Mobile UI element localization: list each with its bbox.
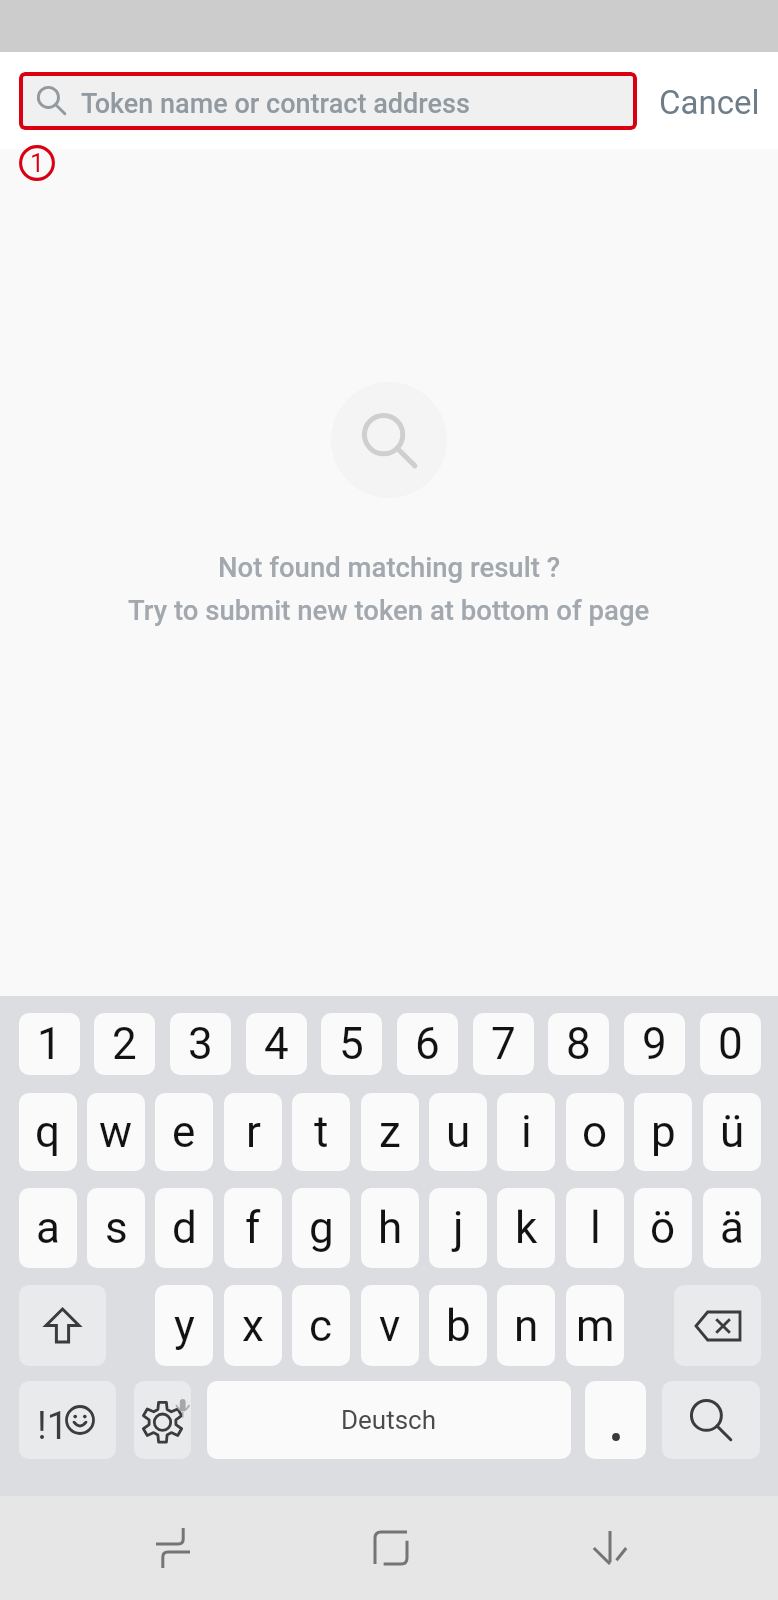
staticText: f <box>245 1202 261 1254</box>
button[interactable]: n <box>497 1285 555 1366</box>
button[interactable]: Symbols and emoji <box>19 1381 116 1459</box>
staticText: n <box>514 1300 539 1352</box>
button[interactable]: ö <box>634 1188 692 1268</box>
button[interactable]: y <box>155 1285 213 1366</box>
staticText: l <box>590 1202 601 1254</box>
button[interactable]: 1 <box>19 1013 80 1075</box>
staticText: 0 <box>718 1018 743 1070</box>
button[interactable]: f <box>224 1188 282 1268</box>
button[interactable]: x <box>224 1285 282 1366</box>
button[interactable]: 0 <box>700 1013 761 1075</box>
staticText: 5 <box>339 1018 364 1070</box>
button[interactable]: 5 <box>321 1013 382 1075</box>
staticText: 2 <box>112 1018 137 1070</box>
button[interactable]: ä <box>703 1188 761 1268</box>
staticText: Not found matching result ? <box>218 551 561 583</box>
staticText: r <box>246 1106 261 1158</box>
button[interactable]: o <box>566 1093 624 1171</box>
button[interactable]: i <box>497 1093 555 1171</box>
button[interactable]: g <box>292 1188 350 1268</box>
staticText: 4 <box>264 1018 289 1070</box>
button[interactable]: r <box>224 1093 282 1171</box>
button[interactable]: p <box>634 1093 692 1171</box>
button[interactable]: s <box>87 1188 145 1268</box>
staticText: a <box>36 1202 60 1254</box>
staticText: 1 <box>37 1018 62 1070</box>
staticText: Try to submit new token at bottom of pag… <box>128 594 650 626</box>
staticText: !1 <box>37 1404 69 1444</box>
button[interactable]: Cancel <box>659 52 760 149</box>
staticText: 9 <box>642 1018 667 1070</box>
button[interactable]: 6 <box>397 1013 458 1075</box>
staticText: v <box>379 1300 401 1352</box>
button[interactable]: d <box>155 1188 213 1268</box>
button[interactable]: 2 <box>94 1013 155 1075</box>
staticText: 8 <box>566 1018 591 1070</box>
staticText: o <box>582 1106 608 1158</box>
button[interactable]: z <box>361 1093 419 1171</box>
button[interactable]: 8 <box>548 1013 609 1075</box>
button[interactable]: 3 <box>170 1013 231 1075</box>
button[interactable]: Recent apps <box>119 1496 227 1600</box>
button[interactable]: b <box>429 1285 487 1366</box>
staticText: i <box>521 1106 532 1158</box>
button[interactable]: Period <box>585 1381 646 1459</box>
staticText: ü <box>720 1106 745 1158</box>
button[interactable]: l <box>566 1188 624 1268</box>
staticText: d <box>172 1202 197 1254</box>
staticText: e <box>172 1106 196 1158</box>
staticText: s <box>105 1202 128 1254</box>
button[interactable]: c <box>292 1285 350 1366</box>
button[interactable]: m <box>566 1285 624 1366</box>
button[interactable]: Shift <box>19 1285 106 1366</box>
staticText: 6 <box>415 1018 440 1070</box>
button[interactable]: Home <box>337 1496 445 1600</box>
staticText: Token name or contract address <box>81 88 470 120</box>
staticText: x <box>242 1300 264 1352</box>
staticText: g <box>309 1202 334 1254</box>
button[interactable]: Deutsch <box>207 1381 571 1459</box>
staticText: y <box>174 1300 195 1352</box>
button[interactable]: ü <box>703 1093 761 1171</box>
button[interactable]: Hide keyboard <box>556 1496 664 1600</box>
staticText: z <box>379 1106 401 1158</box>
button[interactable]: q <box>19 1093 77 1171</box>
button[interactable]: h <box>361 1188 419 1268</box>
staticText: p <box>651 1106 676 1158</box>
staticText: b <box>446 1300 471 1352</box>
staticText: c <box>309 1300 333 1352</box>
staticText: 1 <box>30 149 45 178</box>
button[interactable]: Keyboard settings <box>134 1381 191 1459</box>
button[interactable]: Search <box>662 1381 760 1459</box>
button[interactable]: t <box>292 1093 350 1171</box>
button[interactable]: k <box>497 1188 555 1268</box>
button[interactable]: 7 <box>473 1013 534 1075</box>
staticText: Cancel <box>659 83 760 122</box>
staticText: w <box>99 1106 133 1158</box>
button[interactable]: e <box>155 1093 213 1171</box>
button[interactable]: 4 <box>246 1013 307 1075</box>
button[interactable]: j <box>429 1188 487 1268</box>
staticText: u <box>446 1106 471 1158</box>
button[interactable]: v <box>361 1285 419 1366</box>
staticText: 7 <box>491 1018 516 1070</box>
button[interactable]: 9 <box>624 1013 685 1075</box>
staticText: 3 <box>188 1018 213 1070</box>
staticText: h <box>378 1202 403 1254</box>
staticText: Deutsch <box>341 1405 437 1435</box>
button[interactable]: Backspace <box>674 1285 761 1366</box>
staticText: ö <box>650 1202 676 1254</box>
button[interactable]: u <box>429 1093 487 1171</box>
staticText: m <box>576 1300 615 1352</box>
staticText: k <box>515 1202 538 1254</box>
button[interactable]: Token name or contract address <box>19 72 637 130</box>
staticText: t <box>314 1106 329 1158</box>
button[interactable]: w <box>87 1093 145 1171</box>
staticText: j <box>453 1202 464 1254</box>
button[interactable]: a <box>19 1188 77 1268</box>
staticText: ä <box>720 1202 744 1254</box>
staticText: q <box>35 1106 61 1158</box>
